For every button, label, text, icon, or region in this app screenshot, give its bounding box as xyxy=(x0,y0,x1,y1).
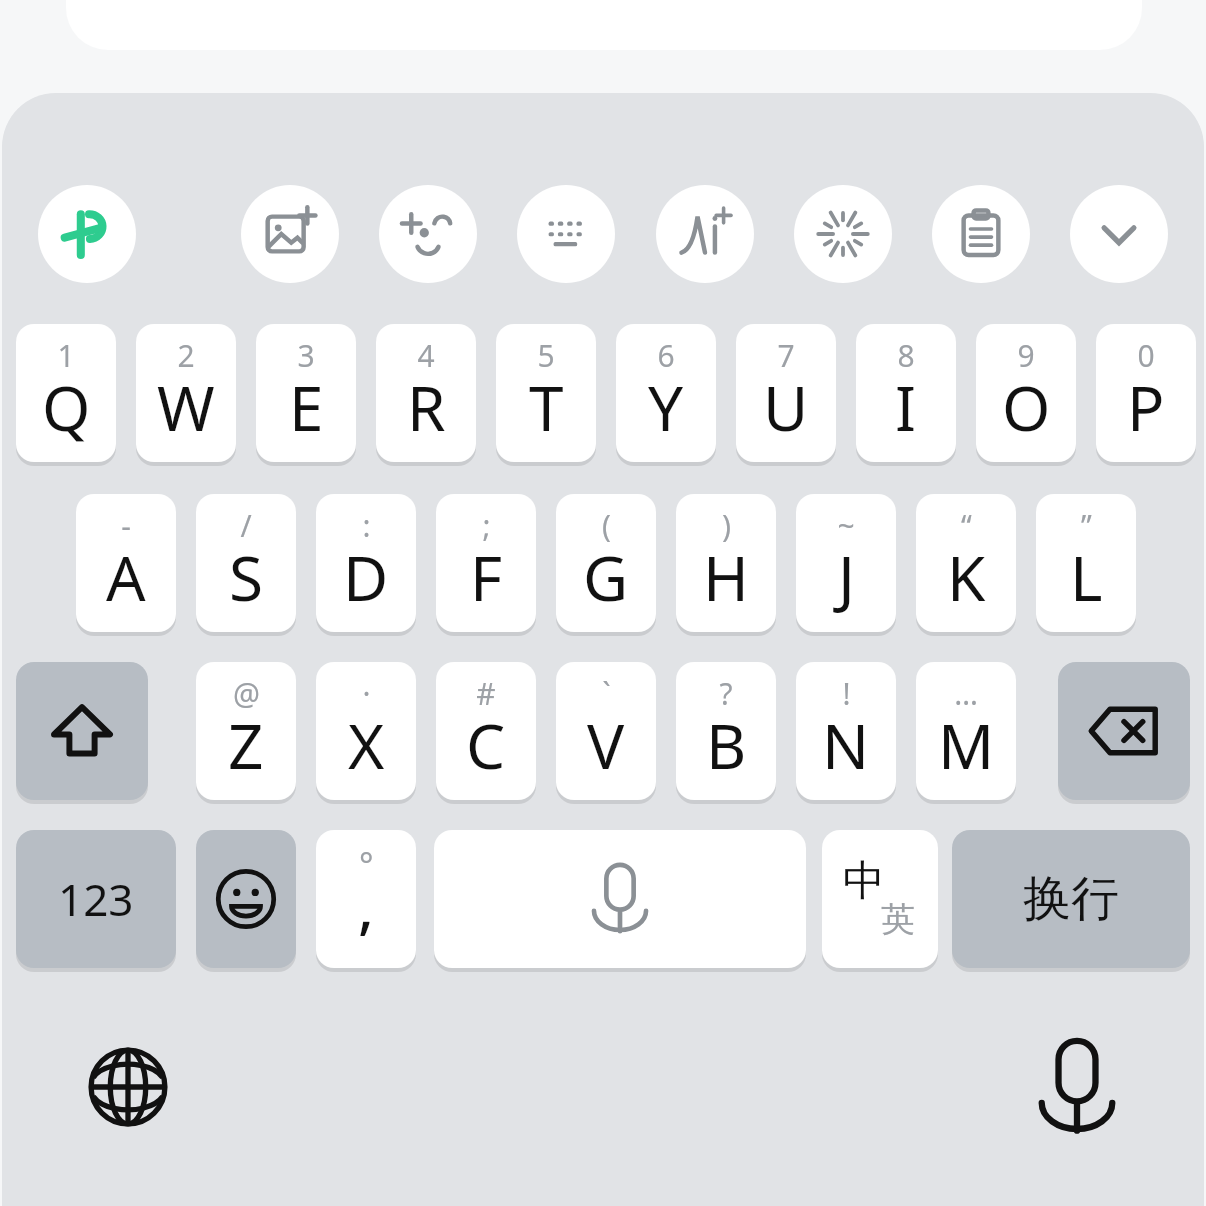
staticText: 6 xyxy=(657,335,675,376)
staticText: S xyxy=(229,535,264,619)
button[interactable]: ~ xyxy=(796,494,896,632)
button[interactable]: Backspace xyxy=(1058,662,1190,800)
staticText: 0 xyxy=(1137,335,1155,376)
button[interactable]: : xyxy=(316,494,416,632)
staticText: 5 xyxy=(537,335,555,376)
button[interactable]: - xyxy=(76,494,176,632)
button[interactable]: 123 xyxy=(16,830,176,968)
staticText: 英 xyxy=(881,898,915,941)
button[interactable]: ( xyxy=(556,494,656,632)
button[interactable]: 0 xyxy=(1096,324,1196,462)
staticText: H xyxy=(703,535,749,619)
staticText: ~ xyxy=(837,505,855,546)
staticText: V xyxy=(587,703,625,787)
button[interactable]: 9 xyxy=(976,324,1076,462)
button[interactable]: 6 xyxy=(616,324,716,462)
staticText: 中 xyxy=(843,855,885,908)
button[interactable]: ! xyxy=(796,662,896,800)
staticText: C xyxy=(466,703,506,787)
button[interactable]: Shift xyxy=(16,662,148,800)
staticText: O xyxy=(1002,365,1051,449)
button[interactable]: 2 xyxy=(136,324,236,462)
staticText: “ xyxy=(961,505,972,546)
staticText: P xyxy=(1127,365,1165,449)
button[interactable]: 1 xyxy=(16,324,116,462)
staticText: Z xyxy=(228,703,264,787)
staticText: ; xyxy=(482,505,491,546)
button[interactable]: Chinese English toggle xyxy=(822,830,938,968)
staticText: G xyxy=(583,535,629,619)
staticText: ? xyxy=(719,673,733,714)
staticText: E xyxy=(289,365,324,449)
staticText: : xyxy=(362,505,371,546)
staticText: M xyxy=(938,703,995,787)
staticText: 4 xyxy=(417,335,435,376)
button[interactable]: Space xyxy=(434,830,806,968)
staticText: I xyxy=(895,365,917,449)
staticText: J xyxy=(838,535,855,619)
staticText: ! xyxy=(842,673,851,714)
button[interactable]: ° xyxy=(316,830,416,968)
button[interactable]: 3 xyxy=(256,324,356,462)
button[interactable]: ` xyxy=(556,662,656,800)
staticText: L xyxy=(1070,535,1103,619)
staticText: T xyxy=(529,365,564,449)
staticText: N xyxy=(822,703,870,787)
button[interactable]: Voice input xyxy=(1017,1027,1137,1147)
staticText: · xyxy=(362,673,371,714)
staticText: ) xyxy=(722,505,731,546)
button[interactable]: Input method xyxy=(38,185,136,283)
button[interactable]: @ xyxy=(196,662,296,800)
staticText: ” xyxy=(1081,505,1092,546)
button[interactable]: ; xyxy=(436,494,536,632)
staticText: / xyxy=(240,505,252,546)
button[interactable]: ) xyxy=(676,494,776,632)
staticText: Q xyxy=(42,365,91,449)
staticText: X xyxy=(348,703,385,787)
button[interactable]: 5 xyxy=(496,324,596,462)
staticText: ° xyxy=(359,842,374,888)
staticText: D xyxy=(343,535,389,619)
staticText: F xyxy=(470,535,503,619)
staticText: 3 xyxy=(297,335,315,376)
staticText: ( xyxy=(602,505,611,546)
button[interactable]: AI writing xyxy=(656,185,754,283)
staticText: R xyxy=(407,365,446,449)
staticText: 9 xyxy=(1017,335,1035,376)
staticText: - xyxy=(121,505,131,546)
button[interactable]: · xyxy=(316,662,416,800)
button[interactable]: 换行 xyxy=(952,830,1190,968)
staticText: B xyxy=(706,703,747,787)
staticText: , xyxy=(358,866,374,945)
staticText: ` xyxy=(602,673,611,714)
staticText: 8 xyxy=(897,335,915,376)
button[interactable]: Effects xyxy=(794,185,892,283)
button[interactable]: Emoji xyxy=(196,830,296,968)
button[interactable]: Keyboard layout xyxy=(517,185,615,283)
button[interactable]: Change language xyxy=(68,1027,188,1147)
button[interactable]: # xyxy=(436,662,536,800)
button[interactable]: 4 xyxy=(376,324,476,462)
button[interactable]: … xyxy=(916,662,1016,800)
staticText: U xyxy=(763,365,809,449)
staticText: … xyxy=(954,673,978,714)
staticText: W xyxy=(157,365,215,449)
button[interactable]: Clipboard xyxy=(932,185,1030,283)
button[interactable]: Emoji face xyxy=(379,185,477,283)
button[interactable]: Sticker xyxy=(241,185,339,283)
button[interactable]: 8 xyxy=(856,324,956,462)
staticText: @ xyxy=(233,673,260,714)
button[interactable]: Collapse xyxy=(1070,185,1168,283)
button[interactable]: ? xyxy=(676,662,776,800)
button[interactable]: “ xyxy=(916,494,1016,632)
staticText: Y xyxy=(648,365,684,449)
button[interactable]: ” xyxy=(1036,494,1136,632)
staticText: 123 xyxy=(58,869,134,929)
staticText: 1 xyxy=(57,335,75,376)
staticText: 2 xyxy=(177,335,195,376)
staticText: 7 xyxy=(777,335,795,376)
staticText: K xyxy=(947,535,986,619)
button[interactable]: 7 xyxy=(736,324,836,462)
staticText: # xyxy=(476,673,496,714)
button[interactable]: / xyxy=(196,494,296,632)
